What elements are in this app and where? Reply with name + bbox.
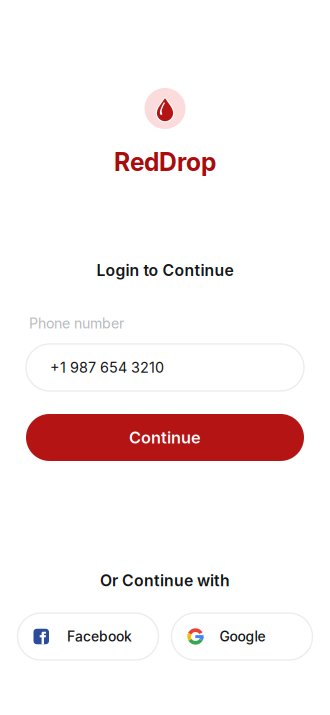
- staticText: RedDrop: [114, 147, 216, 177]
- button[interactable]: Facebook: [17, 613, 158, 660]
- staticText: Phone number: [29, 315, 124, 332]
- button[interactable]: Google: [171, 613, 312, 660]
- staticText: +1 987 654 3210: [50, 359, 164, 376]
- staticText: Google: [219, 628, 265, 645]
- staticText: Login to Continue: [96, 261, 233, 280]
- button[interactable]: +1 987 654 3210: [26, 344, 304, 391]
- staticText: Facebook: [67, 628, 132, 645]
- staticText: Or Continue with: [100, 571, 230, 590]
- button[interactable]: Continue: [26, 414, 304, 461]
- staticText: Continue: [129, 428, 201, 447]
